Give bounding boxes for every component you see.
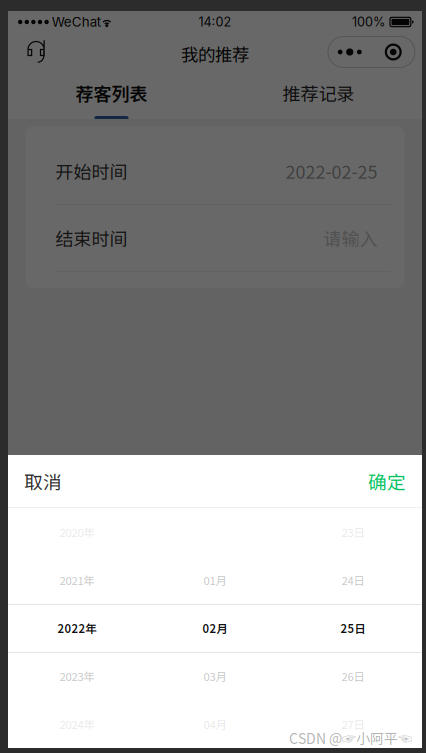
staticText: 请输入 (323, 225, 377, 251)
button[interactable]: More (328, 38, 371, 66)
button[interactable]: 取消 (8, 455, 96, 507)
button[interactable]: Close mini program (371, 38, 415, 66)
staticText: 2022-02-25 (285, 158, 377, 184)
staticText: 2022年 (57, 620, 96, 636)
staticText: 24日 (341, 572, 364, 588)
button[interactable]: Customer service (15, 34, 57, 74)
staticText: CSDN @☞小阿平☜ (289, 728, 412, 748)
staticText: WeChat (52, 14, 101, 30)
staticText: 25日 (340, 620, 365, 636)
staticText: 推荐记录 (282, 80, 354, 106)
staticText: 04月 (203, 716, 226, 732)
staticText: 取消 (24, 467, 62, 494)
staticText: 100% (352, 14, 385, 30)
staticText: 14:02 (198, 14, 231, 30)
staticText: 2020年 (59, 524, 94, 540)
staticText: 02月 (202, 620, 227, 636)
button[interactable]: 推荐记录 (215, 75, 422, 119)
button[interactable]: 确定 (334, 455, 422, 507)
staticText: 开始时间 (55, 158, 127, 184)
staticText: 03月 (203, 668, 226, 684)
staticText: 确定 (368, 467, 406, 494)
staticText: 2024年 (59, 716, 94, 732)
staticText: 27日 (341, 716, 364, 732)
staticText: 2023年 (59, 668, 94, 684)
staticText: 26日 (341, 668, 364, 684)
staticText: 结束时间 (55, 225, 127, 251)
button[interactable]: 荐客列表 (8, 75, 215, 119)
staticText: 01月 (203, 572, 226, 588)
staticText: 荐客列表 (75, 80, 147, 106)
staticText: 我的推荐 (181, 41, 249, 67)
button[interactable]: 结束时间 (25, 205, 404, 271)
staticText: 2021年 (59, 572, 94, 588)
button[interactable]: 开始时间 (25, 138, 404, 204)
staticText: 23日 (341, 524, 364, 540)
